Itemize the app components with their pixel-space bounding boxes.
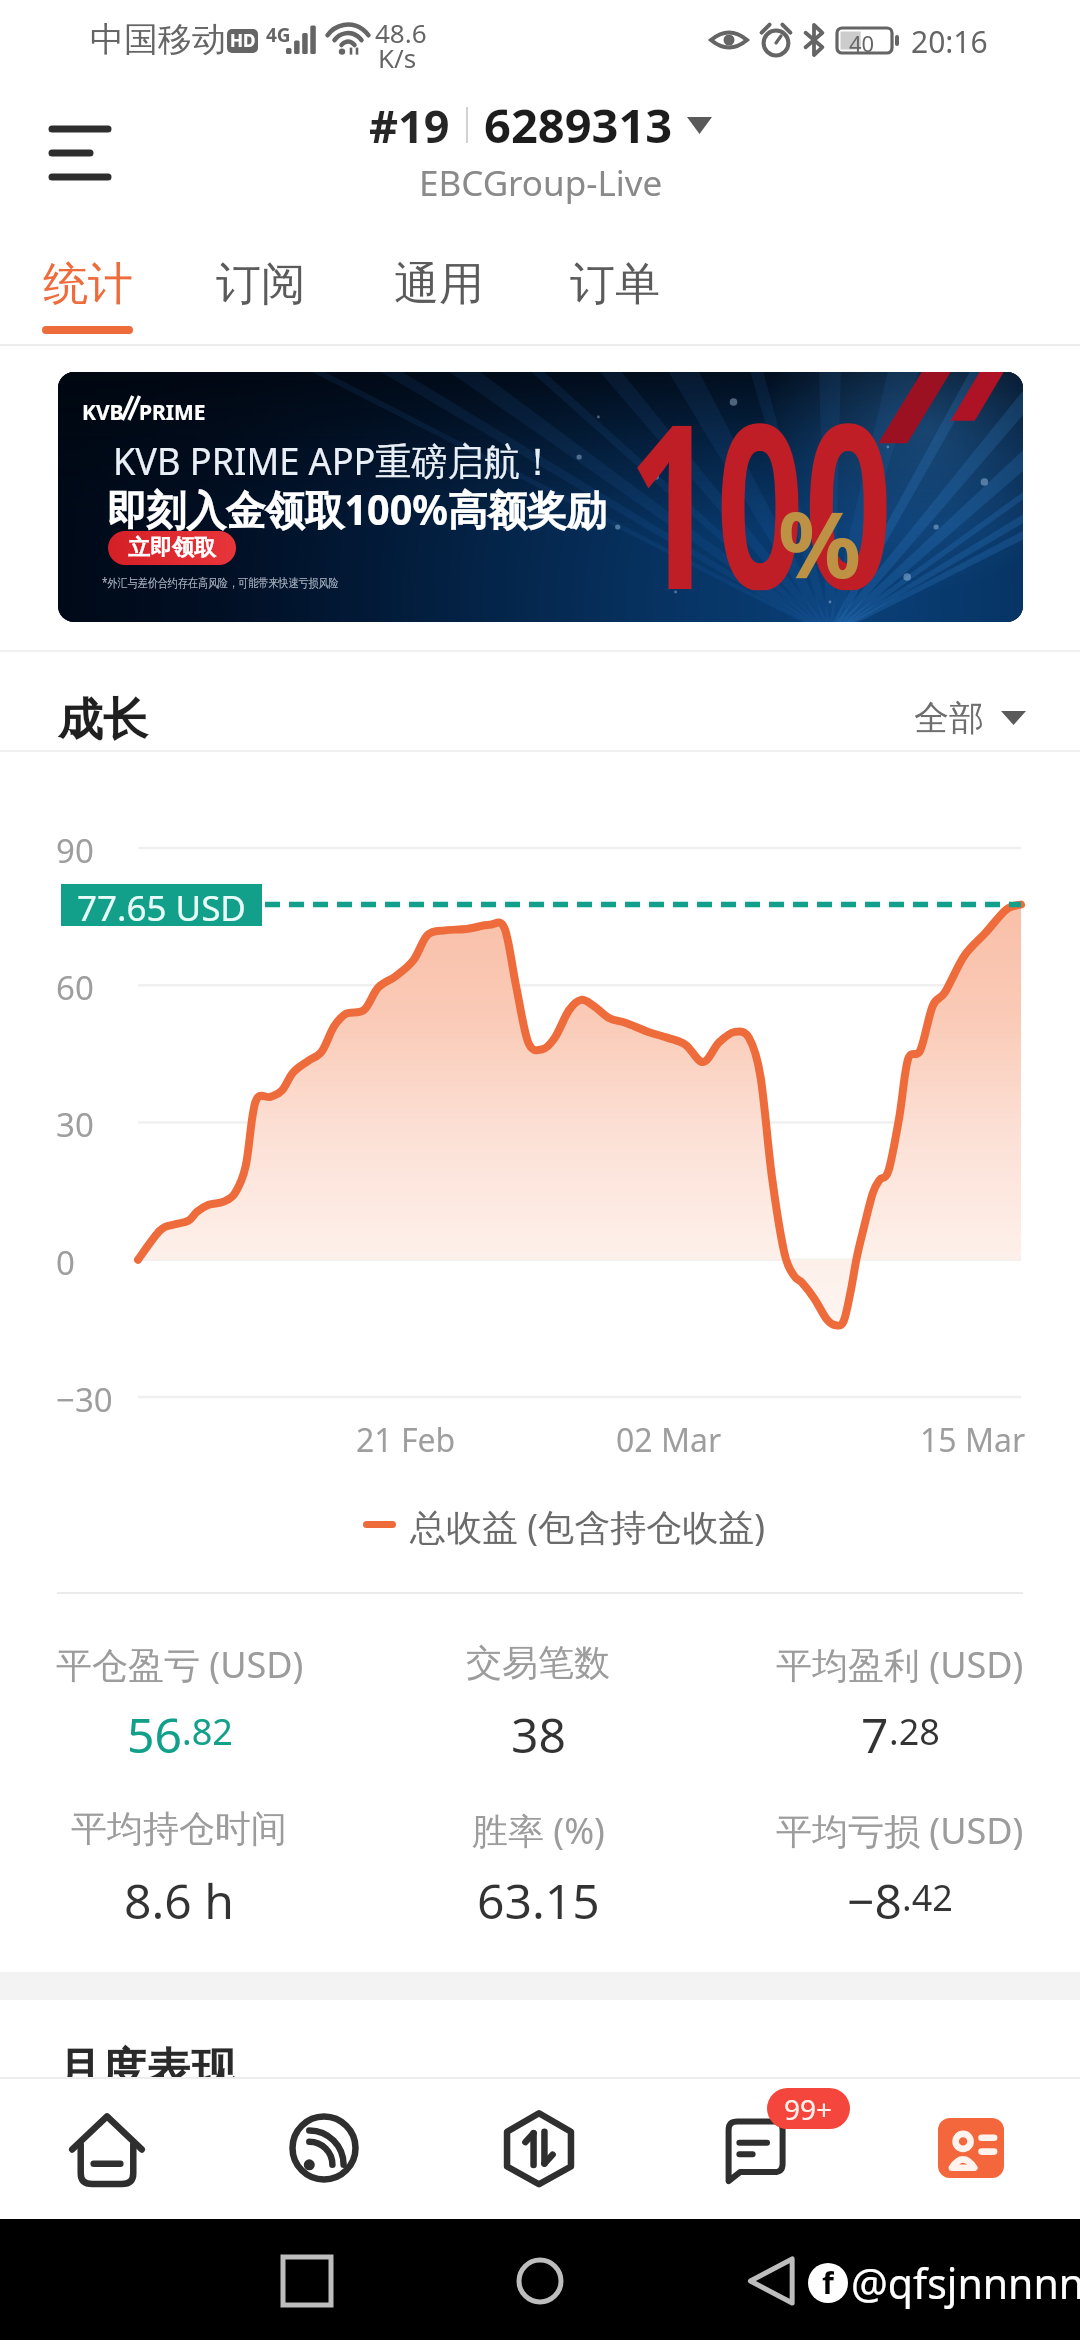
staticText: 40 [849, 28, 875, 58]
staticText: 平均亏损 (USD) [776, 1806, 1024, 1850]
staticText: HD [230, 29, 256, 52]
staticText: 6289313 [484, 93, 673, 157]
staticText: 20:16 [911, 21, 988, 62]
staticText: 立即领取 [128, 534, 216, 562]
staticText: 成长 [58, 692, 148, 749]
staticText: KVB [82, 398, 124, 427]
button[interactable]: 通用 [363, 238, 515, 336]
staticText: 30 [56, 1102, 94, 1144]
button[interactable]: 立即领取 [108, 531, 236, 565]
staticText: *外汇与差价合约存在高风险，可能带来快速亏损风险 [102, 574, 339, 590]
staticText: 全部 [914, 696, 984, 740]
staticText: EBCGroup-Live [419, 159, 663, 207]
staticText: 7 [861, 1702, 889, 1758]
button[interactable]: Home [27, 2077, 187, 2219]
staticText: f [822, 2263, 834, 2301]
staticText: 交易笔数 [466, 1640, 610, 1684]
staticText: 77.65 USD [77, 884, 246, 926]
button[interactable]: Menu [33, 99, 123, 189]
button[interactable]: 订单 [539, 238, 691, 336]
staticText: 100 [628, 372, 892, 590]
staticText: .82 [182, 1707, 233, 1756]
button[interactable]: 全部 [914, 696, 1026, 740]
staticText: 平均持仓时间 [71, 1806, 287, 1850]
staticText: .28 [889, 1707, 940, 1756]
staticText: 38 [511, 1702, 566, 1758]
staticText: 中国移动 [90, 18, 226, 61]
staticText: 15 Mar [920, 1418, 1026, 1462]
staticText: % [778, 480, 861, 605]
staticText: 订单 [570, 256, 660, 313]
staticText: −30 [56, 1377, 113, 1419]
staticText: 63.15 [477, 1868, 600, 1924]
staticText: 即刻入金领取100%高额奖励 [107, 481, 607, 537]
button[interactable]: KVB [58, 372, 1023, 622]
staticText: 胜率 (%) [472, 1806, 605, 1850]
staticText: 总收益 (包含持仓收益) [410, 1502, 765, 1551]
button[interactable]: 订阅 [185, 238, 337, 336]
staticText: 02 Mar [616, 1418, 722, 1462]
staticText: 订阅 [216, 256, 306, 313]
button[interactable]: Trade [459, 2077, 619, 2219]
staticText: #19 [369, 95, 450, 156]
staticText: 60 [56, 965, 94, 1007]
staticText: 平均盈利 (USD) [776, 1640, 1024, 1684]
button[interactable]: Profile [891, 2077, 1051, 2219]
staticText: 统计 [43, 256, 133, 313]
staticText: PRIME [139, 398, 206, 427]
staticText: 21 Feb [356, 1418, 456, 1462]
staticText: 99+ [784, 2090, 833, 2128]
staticText: 0 [56, 1240, 75, 1282]
staticText: .42 [902, 1873, 953, 1922]
staticText: 通用 [394, 256, 484, 313]
button[interactable]: Messages [676, 2077, 836, 2219]
staticText: 8.6 h [124, 1868, 234, 1924]
staticText: 56 [127, 1702, 182, 1758]
staticText: 平仓盈亏 (USD) [56, 1640, 304, 1684]
staticText: @qfsjnnnnn [851, 2255, 1080, 2311]
button[interactable]: Signals [244, 2077, 404, 2219]
staticText: −8 [847, 1868, 902, 1924]
staticText: 48.6 [375, 15, 427, 50]
staticText: K/s [378, 40, 417, 75]
button[interactable]: 统计 [12, 238, 164, 336]
staticText: 4G [266, 22, 291, 48]
staticText: KVB PRIME APP重磅启航！ [113, 434, 557, 486]
staticText: 90 [56, 828, 94, 870]
staticText: 月度表现 [56, 2042, 236, 2099]
